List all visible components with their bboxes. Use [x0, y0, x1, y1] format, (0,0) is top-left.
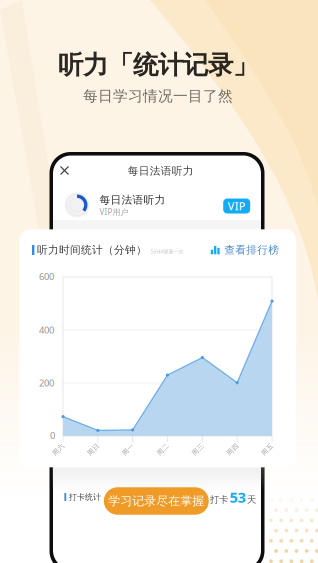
staticText: 53 — [229, 487, 245, 507]
staticText: 打卡统计 — [69, 492, 101, 502]
button[interactable]: VIP — [223, 198, 250, 213]
staticText: 600 — [39, 270, 54, 283]
staticText: 每日法语听力 — [128, 164, 194, 177]
staticText: 查看排行榜 — [224, 243, 279, 256]
staticText: VIP — [228, 199, 246, 213]
staticText: 每日学习情况一目了然 — [83, 87, 233, 105]
staticText: 天 — [247, 494, 256, 505]
staticText: 400 — [39, 324, 54, 336]
staticText: 周四 — [226, 445, 240, 454]
staticText: 200 — [39, 377, 54, 389]
staticText: 5分钟更新一次 — [150, 248, 183, 255]
staticText: 周六 — [51, 445, 65, 454]
staticText: 每日法语听力 — [99, 193, 165, 206]
staticText: 听力时间统计（分钟） — [37, 243, 147, 256]
staticText: 打卡 — [210, 494, 228, 505]
staticText: VIP用户 — [99, 207, 128, 217]
staticText: 听力「统计记录」 — [58, 49, 258, 80]
button[interactable]: 查看排行榜 — [211, 243, 279, 256]
staticText: 周三 — [191, 445, 205, 454]
staticText: 周二 — [156, 445, 170, 454]
staticText: 周五 — [260, 445, 274, 454]
staticText: 周一 — [121, 445, 135, 454]
staticText: 周日 — [86, 445, 100, 454]
staticText: 学习记录尽在掌握 — [108, 494, 204, 508]
staticText: 0 — [50, 429, 55, 442]
button[interactable]: 关闭 — [53, 159, 75, 181]
